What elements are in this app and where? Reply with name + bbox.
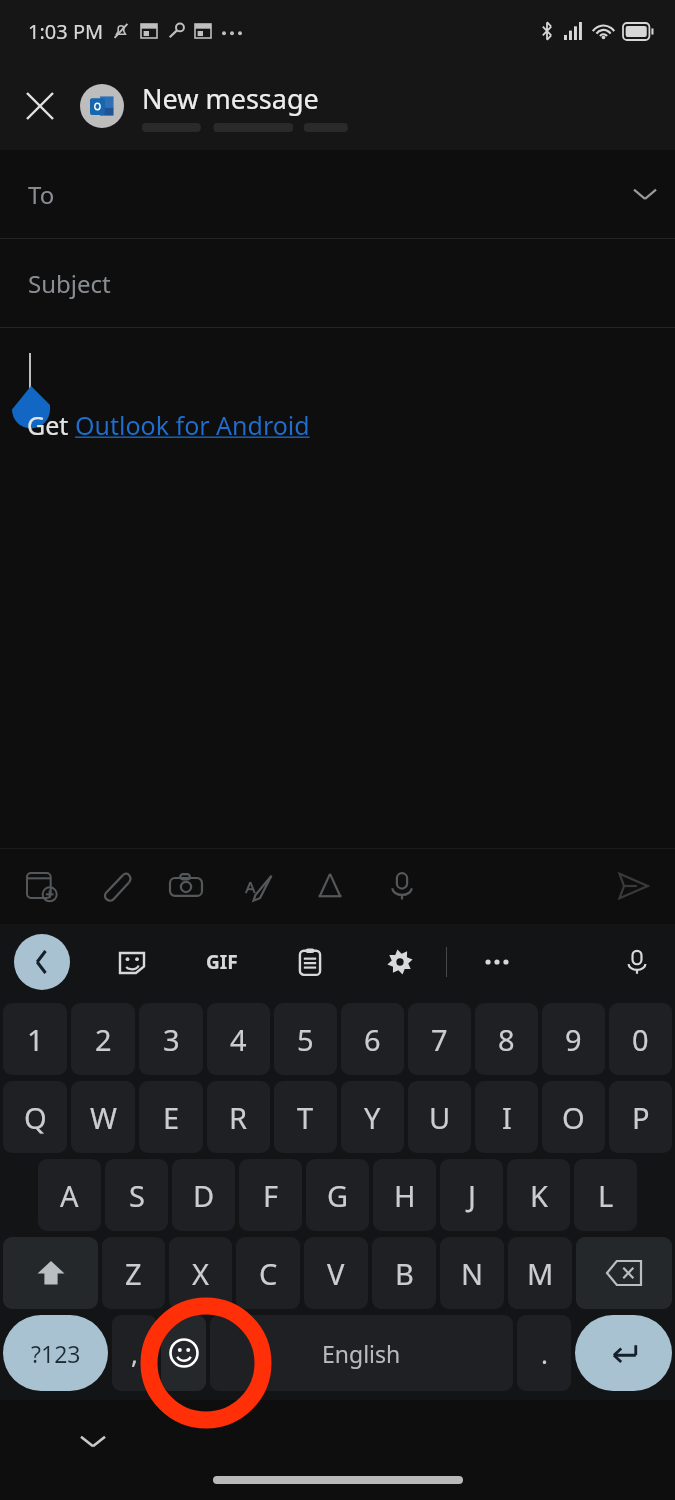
button[interactable]: Expand recipients: [615, 164, 675, 224]
button[interactable]: W: [71, 1081, 135, 1153]
button[interactable]: I: [475, 1081, 538, 1153]
staticText: P: [632, 1098, 650, 1137]
staticText: G: [327, 1176, 349, 1215]
button[interactable]: Back: [14, 934, 70, 990]
staticText: X: [192, 1254, 209, 1293]
button[interactable]: ,: [112, 1315, 157, 1391]
button[interactable]: 7: [408, 1003, 471, 1075]
button[interactable]: S: [105, 1159, 168, 1231]
button[interactable]: Subject: [0, 239, 675, 327]
button[interactable]: Z: [102, 1237, 165, 1309]
staticText: E: [163, 1098, 180, 1137]
staticText: K: [530, 1176, 548, 1215]
staticText: 8: [498, 1020, 515, 1059]
staticText: F: [263, 1176, 279, 1215]
staticText: V: [327, 1254, 345, 1293]
staticText: C: [259, 1254, 278, 1293]
button[interactable]: Enter: [575, 1315, 672, 1391]
staticText: D: [193, 1176, 215, 1215]
staticText: 9: [565, 1020, 582, 1059]
staticText: Z: [125, 1254, 142, 1293]
staticText: O: [562, 1098, 585, 1137]
button[interactable]: Q: [3, 1081, 67, 1153]
button[interactable]: D: [172, 1159, 235, 1231]
button[interactable]: 3: [139, 1003, 203, 1075]
staticText: English: [322, 1338, 401, 1369]
button[interactable]: 6: [341, 1003, 404, 1075]
staticText: .: [541, 1336, 548, 1371]
staticText: W: [90, 1098, 117, 1137]
button[interactable]: Voice input: [615, 940, 659, 984]
button[interactable]: 9: [542, 1003, 605, 1075]
button[interactable]: A: [38, 1159, 101, 1231]
staticText: M: [527, 1254, 554, 1293]
button[interactable]: F: [239, 1159, 302, 1231]
button[interactable]: English: [210, 1315, 513, 1391]
button[interactable]: G: [306, 1159, 369, 1231]
button[interactable]: H: [373, 1159, 436, 1231]
staticText: J: [468, 1176, 476, 1215]
staticText: 4: [230, 1020, 247, 1059]
staticText: Subject: [28, 267, 111, 300]
button[interactable]: T: [274, 1081, 337, 1153]
button[interactable]: 5: [274, 1003, 337, 1075]
button[interactable]: Y: [341, 1081, 404, 1153]
button[interactable]: Backspace: [576, 1237, 672, 1309]
button[interactable]: 1: [3, 1003, 67, 1075]
button[interactable]: Hide keyboard: [70, 1418, 116, 1464]
button[interactable]: J: [440, 1159, 503, 1231]
button[interactable]: To: [0, 150, 675, 238]
button[interactable]: ?123: [3, 1315, 108, 1391]
staticText: Y: [364, 1098, 381, 1137]
staticText: ,: [131, 1336, 138, 1371]
button[interactable]: Camera: [160, 860, 212, 912]
button[interactable]: R: [207, 1081, 270, 1153]
button[interactable]: Close: [0, 66, 80, 146]
button[interactable]: GIF: [200, 940, 244, 984]
button[interactable]: 0: [609, 1003, 672, 1075]
button[interactable]: Send: [607, 860, 659, 912]
button[interactable]: More options: [475, 940, 519, 984]
button[interactable]: Get: [0, 328, 675, 848]
staticText: ?123: [31, 1338, 81, 1369]
button[interactable]: Attach file: [88, 860, 140, 912]
staticText: S: [129, 1176, 145, 1215]
button[interactable]: Outlook for Android: [75, 408, 310, 442]
staticText: GIF: [206, 949, 238, 975]
button[interactable]: 4: [207, 1003, 270, 1075]
button[interactable]: Emoji: [161, 1315, 206, 1391]
staticText: Get: [27, 408, 75, 442]
staticText: B: [395, 1254, 414, 1293]
button[interactable]: U: [408, 1081, 471, 1153]
button[interactable]: Add attachment from cloud: [16, 860, 68, 912]
button[interactable]: M: [508, 1237, 572, 1309]
button[interactable]: Draw: [232, 860, 284, 912]
staticText: I: [502, 1098, 512, 1137]
button[interactable]: Dictate: [376, 860, 428, 912]
button[interactable]: 8: [475, 1003, 538, 1075]
button[interactable]: Shift: [3, 1237, 98, 1309]
staticText: 1: [27, 1020, 44, 1059]
button[interactable]: V: [304, 1237, 368, 1309]
button[interactable]: Settings: [378, 940, 422, 984]
staticText: 5: [297, 1020, 314, 1059]
button[interactable]: X: [169, 1237, 232, 1309]
button[interactable]: Stickers: [110, 940, 154, 984]
staticText: New message: [142, 80, 319, 117]
staticText: U: [429, 1098, 451, 1137]
button[interactable]: C: [236, 1237, 300, 1309]
button[interactable]: Account: [80, 84, 124, 128]
button[interactable]: L: [574, 1159, 637, 1231]
button[interactable]: E: [139, 1081, 203, 1153]
button[interactable]: Clipboard: [288, 940, 332, 984]
staticText: A: [60, 1176, 79, 1215]
button[interactable]: P: [609, 1081, 672, 1153]
button[interactable]: B: [372, 1237, 436, 1309]
button[interactable]: K: [507, 1159, 570, 1231]
button[interactable]: .: [517, 1315, 571, 1391]
button[interactable]: O: [542, 1081, 605, 1153]
staticText: T: [297, 1098, 314, 1137]
button[interactable]: 2: [71, 1003, 135, 1075]
button[interactable]: N: [440, 1237, 504, 1309]
button[interactable]: Formatting: [304, 860, 356, 912]
